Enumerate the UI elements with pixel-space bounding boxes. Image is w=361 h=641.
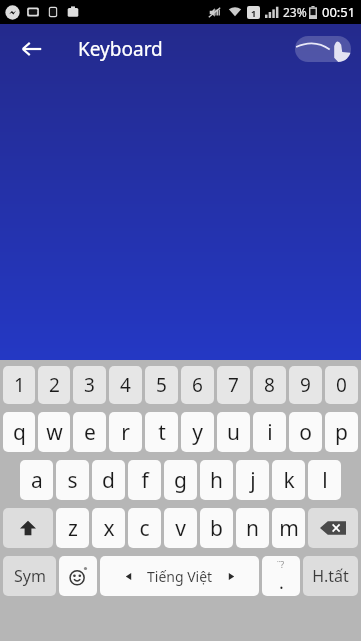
- staticText: k: [283, 466, 295, 495]
- other: Backspace: [308, 508, 358, 548]
- button[interactable]: Back: [12, 29, 52, 69]
- button[interactable]: e: [73, 412, 106, 452]
- staticText: w: [46, 418, 63, 447]
- staticText: t: [158, 418, 166, 447]
- button[interactable]: 4: [109, 366, 142, 404]
- staticText: x: [103, 514, 115, 543]
- staticText: 4: [120, 372, 131, 398]
- button[interactable]: 5: [145, 366, 178, 404]
- button[interactable]: 3: [73, 366, 106, 404]
- button[interactable]: r: [109, 412, 142, 452]
- staticText: 23%: [283, 4, 307, 20]
- staticText: 1: [14, 372, 25, 398]
- button[interactable]: x: [92, 508, 125, 548]
- button[interactable]: y: [181, 412, 214, 452]
- staticText: H.tất: [312, 565, 349, 587]
- button[interactable]: k: [272, 460, 305, 500]
- button[interactable]: u: [217, 412, 250, 452]
- button[interactable]: c: [128, 508, 161, 548]
- button[interactable]: 8: [253, 366, 286, 404]
- staticText: q: [13, 418, 26, 447]
- button[interactable]: z: [56, 508, 89, 548]
- staticText: f: [141, 466, 149, 495]
- staticText: 7: [228, 372, 239, 398]
- staticText: ˙˙?: [277, 558, 285, 570]
- staticText: 00:51: [322, 3, 356, 21]
- staticText: o: [299, 418, 312, 447]
- button[interactable]: Shift: [3, 508, 53, 548]
- button[interactable]: o: [289, 412, 322, 452]
- button[interactable]: h: [200, 460, 233, 500]
- button[interactable]: 1: [3, 366, 35, 404]
- staticText: g: [174, 466, 187, 495]
- staticText: c: [139, 514, 150, 543]
- button[interactable]: 7: [217, 366, 250, 404]
- other: Emoji: [59, 556, 97, 596]
- staticText: Sym: [14, 565, 46, 587]
- button[interactable]: Backspace: [308, 508, 358, 548]
- button[interactable]: g: [164, 460, 197, 500]
- button[interactable]: 6: [181, 366, 214, 404]
- button[interactable]: 0: [325, 366, 358, 404]
- button[interactable]: s: [56, 460, 89, 500]
- staticText: b: [210, 514, 223, 543]
- staticText: l: [322, 466, 328, 495]
- button[interactable]: Sym: [3, 556, 56, 596]
- staticText: 3: [84, 372, 95, 398]
- staticText: 2: [49, 372, 60, 398]
- button[interactable]: Toggle: [295, 36, 351, 62]
- button[interactable]: 2: [38, 366, 70, 404]
- button[interactable]: v: [164, 508, 197, 548]
- staticText: e: [84, 418, 96, 447]
- staticText: 6: [192, 372, 203, 398]
- staticText: 0: [336, 372, 347, 398]
- button[interactable]: m: [272, 508, 305, 548]
- button[interactable]: b: [200, 508, 233, 548]
- button[interactable]: Tiếng Việt: [100, 556, 259, 596]
- staticText: 1: [251, 7, 257, 19]
- staticText: p: [335, 418, 348, 447]
- staticText: s: [67, 466, 78, 495]
- staticText: v: [175, 514, 186, 543]
- staticText: d: [102, 466, 115, 495]
- button[interactable]: p: [325, 412, 358, 452]
- staticText: j: [250, 466, 256, 495]
- button[interactable]: H.tất: [303, 556, 358, 596]
- other: Shift: [3, 508, 53, 548]
- staticText: u: [227, 418, 240, 447]
- staticText: Keyboard: [78, 36, 163, 62]
- button[interactable]: j: [236, 460, 269, 500]
- button[interactable]: Period: [262, 556, 300, 596]
- button[interactable]: a: [20, 460, 53, 500]
- button[interactable]: f: [128, 460, 161, 500]
- button[interactable]: t: [145, 412, 178, 452]
- button[interactable]: d: [92, 460, 125, 500]
- button[interactable]: w: [38, 412, 70, 452]
- staticText: 8: [264, 372, 275, 398]
- button[interactable]: 9: [289, 366, 322, 404]
- staticText: a: [31, 466, 43, 495]
- staticText: Tiếng Việt: [147, 567, 213, 586]
- staticText: z: [68, 514, 78, 543]
- button[interactable]: n: [236, 508, 269, 548]
- other: Period: [262, 556, 300, 596]
- staticText: h: [210, 466, 223, 495]
- staticText: m: [279, 514, 299, 543]
- button[interactable]: Emoji: [59, 556, 97, 596]
- staticText: .: [279, 570, 284, 595]
- button[interactable]: i: [253, 412, 286, 452]
- button[interactable]: l: [308, 460, 341, 500]
- staticText: 5: [156, 372, 167, 398]
- staticText: r: [121, 418, 130, 447]
- staticText: i: [267, 418, 273, 447]
- button[interactable]: q: [3, 412, 35, 452]
- staticText: 9: [300, 372, 311, 398]
- staticText: y: [192, 418, 203, 447]
- staticText: n: [246, 514, 259, 543]
